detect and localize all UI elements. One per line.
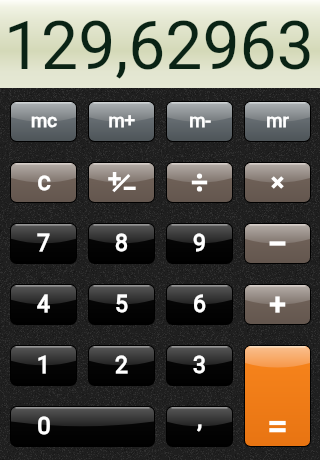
staticText: mc [31, 108, 57, 135]
staticText: 2 [115, 349, 128, 383]
button[interactable]: Six [166, 284, 233, 325]
staticText: 3 [193, 349, 206, 383]
button[interactable]: Nine [166, 223, 233, 264]
button[interactable]: Minus [244, 223, 311, 264]
button[interactable]: Memory subtract [166, 101, 233, 142]
staticText: 6 [193, 288, 206, 322]
staticText: 0 [37, 409, 51, 444]
button[interactable]: Decimal separator [166, 406, 233, 447]
button[interactable]: Seven [10, 223, 77, 264]
button[interactable]: Clear [10, 162, 77, 203]
staticText: m- [189, 108, 211, 135]
staticText: c [37, 164, 51, 201]
button[interactable]: Equals [244, 345, 311, 447]
staticText: 8 [115, 227, 128, 261]
button[interactable]: Eight [88, 223, 155, 264]
button[interactable]: Four [10, 284, 77, 325]
staticText: 129,62963 [4, 0, 314, 88]
button[interactable]: Three [166, 345, 233, 386]
button[interactable]: Memory recall [244, 101, 311, 142]
button[interactable]: Memory add [88, 101, 155, 142]
button[interactable]: Plus minus [88, 162, 155, 203]
staticText: 9 [193, 227, 206, 261]
staticText: 7 [37, 227, 50, 261]
button[interactable]: One [10, 345, 77, 386]
button[interactable]: Multiply [244, 162, 311, 203]
button[interactable]: Divide [166, 162, 233, 203]
button[interactable]: Plus [244, 284, 311, 325]
button[interactable]: Two [88, 345, 155, 386]
button[interactable]: Five [88, 284, 155, 325]
staticText: mr [266, 108, 289, 135]
button[interactable]: Memory clear [10, 101, 77, 142]
staticText: , [197, 403, 202, 438]
staticText: 4 [37, 288, 50, 322]
staticText: 5 [115, 288, 128, 322]
staticText: m+ [108, 108, 135, 135]
button[interactable]: Zero [10, 406, 155, 447]
staticText: 1 [37, 349, 50, 383]
